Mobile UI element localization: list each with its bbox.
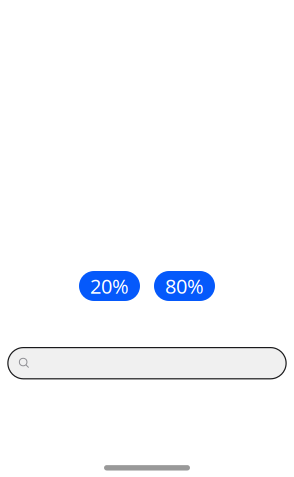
button[interactable]: Search — [0, 347, 294, 379]
button[interactable]: 20% — [79, 271, 140, 301]
button[interactable]: 80% — [154, 271, 215, 301]
staticText: 80% — [165, 273, 204, 299]
staticText: 20% — [90, 273, 129, 299]
